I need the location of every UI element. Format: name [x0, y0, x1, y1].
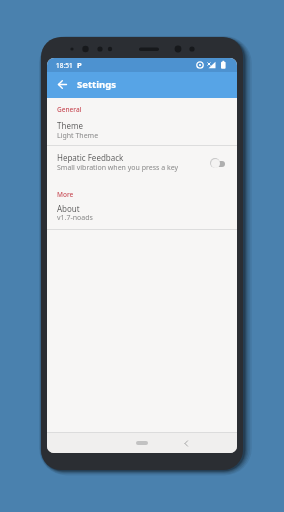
- staticText: Settings: [77, 78, 116, 91]
- staticText: Theme: [57, 120, 83, 131]
- staticText: About: [57, 203, 80, 214]
- button[interactable]: Hepatic Feedback: [47, 149, 237, 177]
- staticText: 18:51: [56, 61, 73, 70]
- staticText: Hepatic Feedback: [57, 152, 124, 163]
- staticText: v1.7-noads: [57, 213, 93, 223]
- staticText: General: [57, 105, 82, 114]
- button[interactable]: [179, 436, 193, 450]
- staticText: Light Theme: [57, 131, 99, 141]
- button[interactable]: [47, 71, 77, 97]
- button[interactable]: [136, 441, 148, 445]
- staticText: Small vibration when you press a key: [57, 163, 179, 173]
- staticText: P: [77, 60, 82, 70]
- button[interactable]: Theme: [47, 117, 237, 145]
- staticText: More: [57, 190, 74, 199]
- button[interactable]: About: [47, 200, 237, 226]
- button[interactable]: [207, 156, 231, 170]
